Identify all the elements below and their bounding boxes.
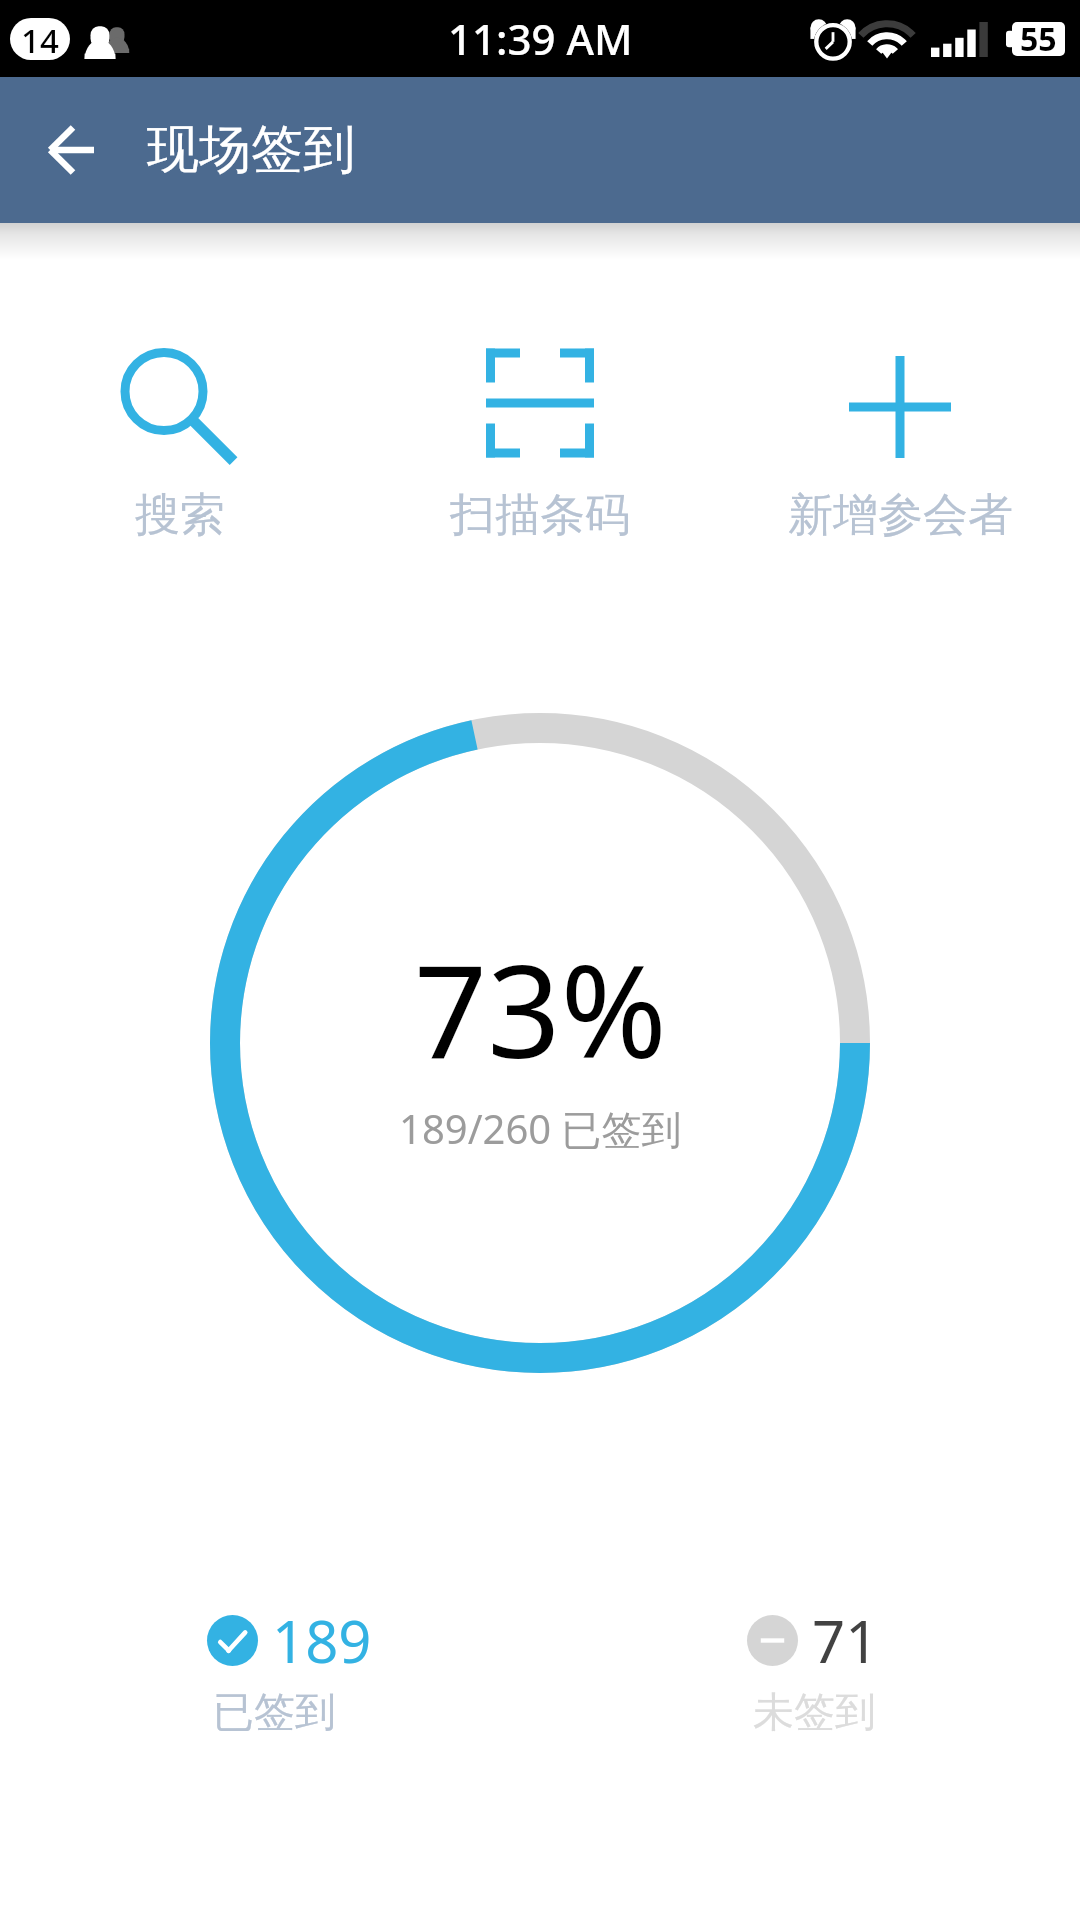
staticText: 189 [272, 1601, 372, 1680]
staticText: 14 [21, 18, 59, 60]
button[interactable]: 搜索 [0, 343, 360, 548]
button[interactable]: 新增参会者 [720, 343, 1080, 548]
staticText: 189/260 已签到 [399, 1101, 682, 1156]
staticText: 11:39 AM [448, 10, 633, 67]
staticText: 已签到 [213, 1687, 336, 1739]
staticText: 未签到 [753, 1687, 876, 1739]
button[interactable]: 71 [747, 1601, 879, 1739]
button[interactable]: 189 [207, 1601, 372, 1739]
staticText: 55 [1020, 17, 1057, 61]
staticText: 扫描条码 [450, 487, 630, 544]
staticText: 搜索 [135, 487, 225, 544]
staticText: 现场签到 [147, 117, 355, 183]
button[interactable]: 扫描条码 [360, 343, 720, 548]
button[interactable]: Back [26, 104, 118, 196]
staticText: 新增参会者 [788, 487, 1013, 544]
staticText: 73% [414, 921, 667, 1095]
staticText: 71 [812, 1601, 879, 1680]
